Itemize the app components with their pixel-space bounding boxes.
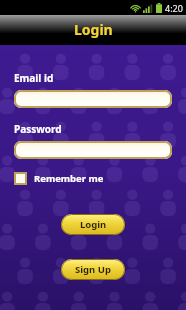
staticText: Remember me <box>34 172 104 185</box>
button[interactable] <box>14 141 172 159</box>
staticText: Email id <box>14 71 54 85</box>
staticText: Login <box>74 20 113 39</box>
button[interactable] <box>14 90 172 108</box>
staticText: Password <box>14 122 62 136</box>
staticText: Login <box>80 218 107 231</box>
staticText: Sign Up <box>75 263 111 276</box>
button[interactable]: Remember me <box>14 172 104 185</box>
staticText: 4:20 <box>165 2 183 14</box>
button[interactable]: Login <box>61 214 125 235</box>
button[interactable]: Sign Up <box>61 259 125 280</box>
